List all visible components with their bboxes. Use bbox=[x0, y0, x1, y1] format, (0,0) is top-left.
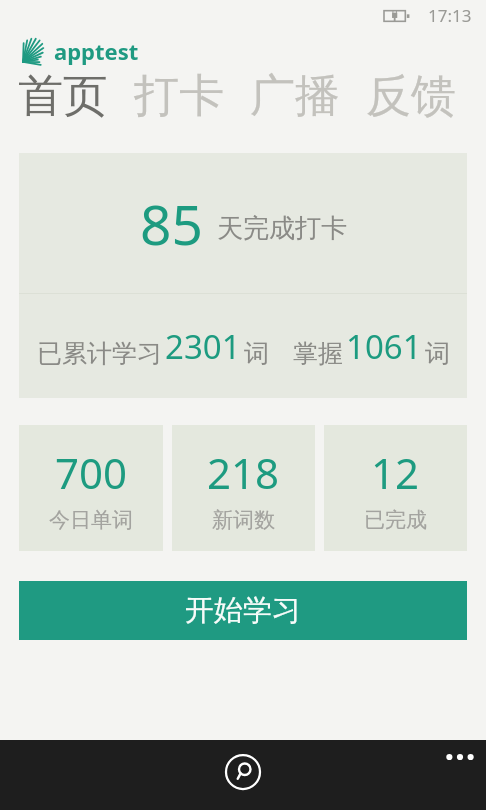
staticText: 广播 bbox=[250, 68, 340, 125]
button[interactable]: 218 bbox=[172, 425, 315, 551]
button[interactable]: 打卡 bbox=[134, 68, 224, 125]
button[interactable]: apptest bbox=[20, 36, 139, 66]
staticText: 218 bbox=[207, 444, 280, 501]
staticText: 12 bbox=[371, 444, 420, 501]
staticText: 今日单词 bbox=[49, 507, 133, 533]
staticText: 词 bbox=[244, 338, 269, 369]
staticText: 已累计学习 bbox=[37, 338, 162, 369]
button[interactable]: More options bbox=[434, 742, 486, 772]
button[interactable]: 开始学习 bbox=[19, 581, 467, 640]
staticText: 已完成 bbox=[364, 507, 427, 533]
staticText: 打卡 bbox=[134, 68, 224, 125]
staticText: 首页 bbox=[18, 68, 108, 125]
button[interactable]: 12 bbox=[324, 425, 467, 551]
staticText: 700 bbox=[55, 444, 128, 501]
staticText: 2301 bbox=[165, 324, 241, 369]
button[interactable]: 700 bbox=[19, 425, 163, 551]
staticText: 词 bbox=[425, 338, 450, 369]
staticText: apptest bbox=[54, 36, 139, 66]
button[interactable]: 广播 bbox=[250, 68, 340, 125]
button[interactable]: 反馈 bbox=[366, 68, 456, 125]
staticText: 新词数 bbox=[212, 507, 275, 533]
staticText: 85 bbox=[140, 186, 203, 261]
staticText: 开始学习 bbox=[185, 592, 301, 629]
staticText: 17:13 bbox=[428, 4, 472, 27]
button[interactable]: 首页 bbox=[18, 68, 108, 125]
staticText: 反馈 bbox=[366, 68, 456, 125]
button[interactable]: Search bbox=[217, 746, 269, 798]
staticText: 天完成打卡 bbox=[217, 212, 347, 245]
staticText: 掌握 bbox=[293, 338, 343, 369]
staticText: 1061 bbox=[346, 324, 422, 369]
button[interactable]: 85 bbox=[19, 153, 467, 398]
